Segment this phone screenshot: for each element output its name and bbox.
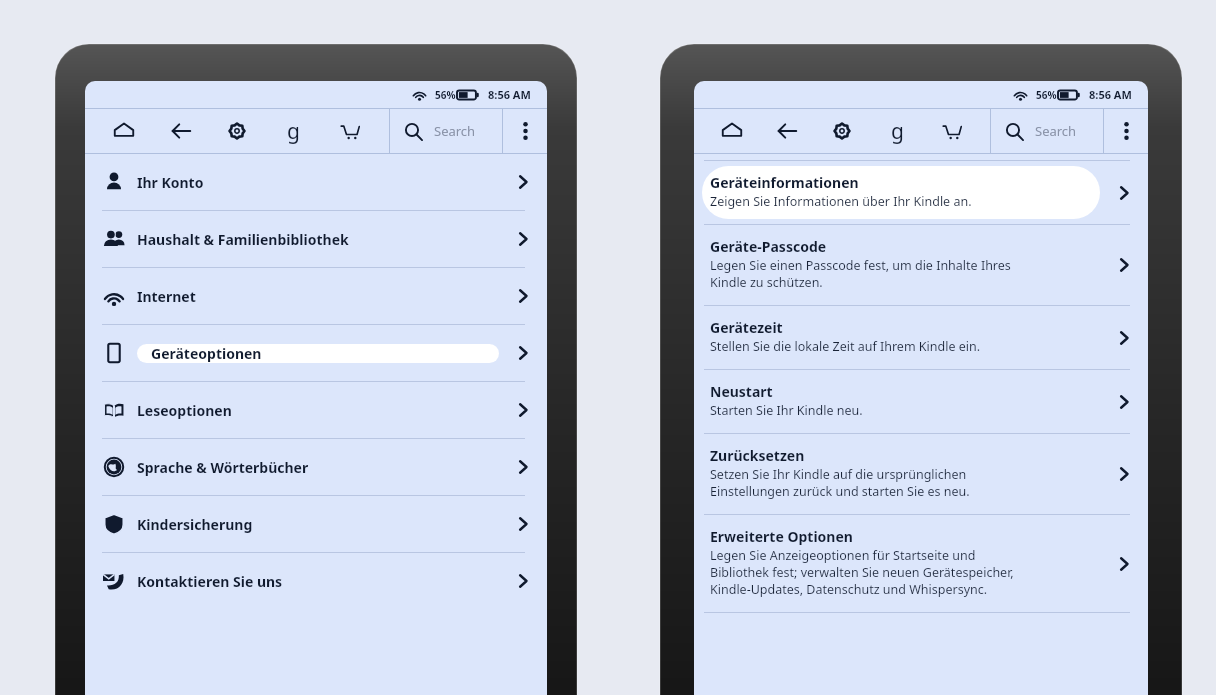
staticText: Search bbox=[1035, 122, 1077, 140]
button[interactable]: Search bbox=[390, 109, 502, 153]
staticText: Kindersicherung bbox=[137, 515, 253, 534]
staticText: Starten Sie Ihr Kindle neu. bbox=[710, 402, 863, 419]
button[interactable]: Internet bbox=[85, 268, 547, 324]
staticText: g bbox=[287, 117, 300, 146]
button[interactable]: Store bbox=[333, 114, 367, 148]
staticText: Erweiterte Optionen bbox=[710, 527, 853, 546]
staticText: 56% bbox=[1036, 88, 1057, 102]
staticText: Setzen Sie Ihr Kindle auf die ursprüngli… bbox=[710, 466, 967, 483]
staticText: Gerätezeit bbox=[710, 318, 783, 337]
button[interactable]: Gerätezeit bbox=[694, 306, 1148, 369]
button[interactable]: Neustart bbox=[694, 370, 1148, 433]
staticText: Geräteinformationen bbox=[710, 173, 859, 192]
staticText: Stellen Sie die lokale Zeit auf Ihrem Ki… bbox=[710, 338, 981, 355]
button[interactable]: Leseoptionen bbox=[85, 382, 547, 438]
staticText: 8:56 AM bbox=[1089, 87, 1132, 102]
staticText: Haushalt & Familienbibliothek bbox=[137, 230, 349, 249]
button[interactable]: More options bbox=[1104, 109, 1148, 153]
button[interactable]: Settings bbox=[825, 114, 859, 148]
button[interactable]: Kindersicherung bbox=[85, 496, 547, 552]
staticText: Zeigen Sie Informationen über Ihr Kindle… bbox=[710, 193, 972, 210]
button[interactable]: Haushalt & Familienbibliothek bbox=[85, 211, 547, 267]
button[interactable]: Back bbox=[164, 114, 198, 148]
staticText: Kindle zu schützen. bbox=[710, 274, 823, 291]
staticText: Bibliothek fest; verwalten Sie neuen Ger… bbox=[710, 564, 1014, 581]
staticText: Legen Sie Anzeigeoptionen für Startseite… bbox=[710, 547, 976, 564]
staticText: Geräte-Passcode bbox=[710, 237, 827, 256]
staticText: Neustart bbox=[710, 382, 773, 401]
staticText: 8:56 AM bbox=[488, 87, 531, 102]
staticText: Sprache & Wörterbücher bbox=[137, 458, 309, 477]
staticText: Geräteoptionen bbox=[151, 344, 262, 363]
button[interactable]: Zurücksetzen bbox=[694, 434, 1148, 514]
staticText: Einstellungen zurück und starten Sie es … bbox=[710, 483, 970, 500]
button[interactable]: Home bbox=[715, 114, 749, 148]
staticText: g bbox=[891, 117, 904, 146]
button[interactable]: Search bbox=[991, 109, 1103, 153]
button[interactable]: Geräte-Passcode bbox=[694, 225, 1148, 305]
staticText: Kontaktieren Sie uns bbox=[137, 572, 283, 591]
button[interactable]: Kontaktieren Sie uns bbox=[85, 553, 547, 609]
staticText: Leseoptionen bbox=[137, 401, 232, 420]
button[interactable]: Goodreads bbox=[276, 114, 310, 148]
button[interactable]: Home bbox=[107, 114, 141, 148]
staticText: Zurücksetzen bbox=[710, 446, 805, 465]
staticText: Legen Sie einen Passcode fest, um die In… bbox=[710, 257, 1011, 274]
button[interactable]: Geräteoptionen bbox=[85, 325, 547, 381]
button[interactable]: Back bbox=[770, 114, 804, 148]
button[interactable]: Erweiterte Optionen bbox=[694, 515, 1148, 612]
button[interactable]: Store bbox=[935, 114, 969, 148]
staticText: Search bbox=[434, 122, 476, 140]
button[interactable]: Geräteinformationen bbox=[694, 161, 1148, 224]
button[interactable]: Sprache & Wörterbücher bbox=[85, 439, 547, 495]
button[interactable]: More options bbox=[503, 109, 547, 153]
button[interactable]: Goodreads bbox=[880, 114, 914, 148]
staticText: Kindle-Updates, Datenschutz und Whispers… bbox=[710, 581, 988, 598]
staticText: 56% bbox=[435, 88, 456, 102]
button[interactable]: Settings bbox=[220, 114, 254, 148]
button[interactable]: Ihr Konto bbox=[85, 154, 547, 210]
staticText: Internet bbox=[137, 287, 196, 306]
staticText: Ihr Konto bbox=[137, 173, 204, 192]
